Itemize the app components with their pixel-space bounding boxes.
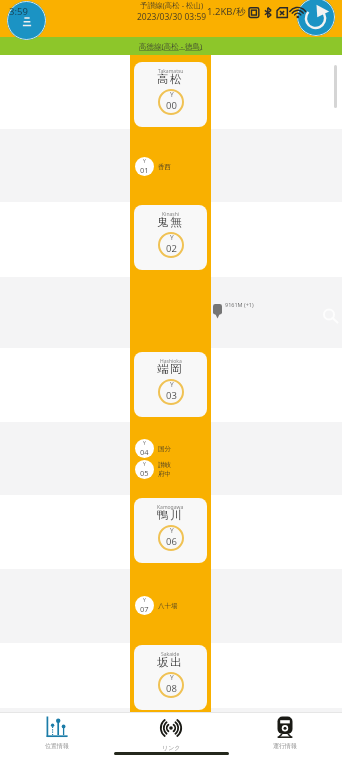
button[interactable]: Refresh [297,0,335,36]
staticText: Takamatsu [158,68,184,75]
staticText: Y [170,233,174,242]
button[interactable]: リンク [114,713,228,762]
staticText: Y [170,380,174,389]
staticText: 高松 [157,72,184,86]
staticText: 八十場 [158,602,178,610]
staticText: Y [170,526,174,535]
staticText: 予讃線(高松 - 松山) [140,0,204,10]
staticText: 2023/03/30 03:59 [137,11,207,23]
staticText: Hashioka [160,358,182,365]
staticText: 端岡 [157,362,184,376]
button[interactable]: Hashioka [134,352,207,417]
staticText: 府中 [158,470,171,478]
staticText: Y [143,440,146,447]
button[interactable]: 高徳線(高松 - 徳島) [0,37,342,55]
staticText: 3:59 [9,5,28,18]
button[interactable]: Sakaide [134,645,207,710]
staticText: Y [170,673,174,682]
staticText: 06 [166,535,177,548]
staticText: 運行情報 [273,742,297,750]
staticText: Kamogawa [157,504,184,511]
staticText: 00 [166,99,177,112]
staticText: リンク [162,744,181,752]
button[interactable]: Y [135,439,171,458]
staticText: 坂出 [157,655,184,669]
staticText: Sakaide [161,651,180,658]
button[interactable]: 位置情報 [0,713,114,762]
staticText: Y [143,158,146,165]
staticText: 08 [166,682,177,695]
staticText: 1.2KB/秒 [207,5,246,18]
staticText: 位置情報 [45,742,69,750]
staticText: 讃岐 [158,461,171,469]
staticText: 香西 [158,163,171,171]
button[interactable]: Menu [7,1,46,40]
staticText: Kinashi [162,211,180,218]
button[interactable]: Kinashi [134,205,207,270]
staticText: Y [143,597,146,604]
staticText: 02 [166,242,177,255]
staticText: 鴨川 [157,508,184,522]
button[interactable]: Y [135,157,171,176]
staticText: 9161M (+1) [225,301,254,308]
button[interactable]: Takamatsu [134,62,207,127]
staticText: 鬼無 [157,215,184,229]
button[interactable]: Y [135,460,171,479]
staticText: 高徳線(高松 - 徳島) [139,41,203,51]
button[interactable]: Kamogawa [134,498,207,563]
staticText: Y [170,90,174,99]
button[interactable]: Y [135,596,178,615]
staticText: 07 [140,604,149,614]
staticText: 03 [166,389,177,402]
button[interactable]: 運行情報 [228,713,342,762]
button[interactable]: Search [322,306,340,324]
staticText: 01 [140,165,149,175]
staticText: 国分 [158,445,171,453]
staticText: 05 [140,468,149,478]
staticText: 04 [140,447,149,457]
staticText: Y [143,461,146,468]
